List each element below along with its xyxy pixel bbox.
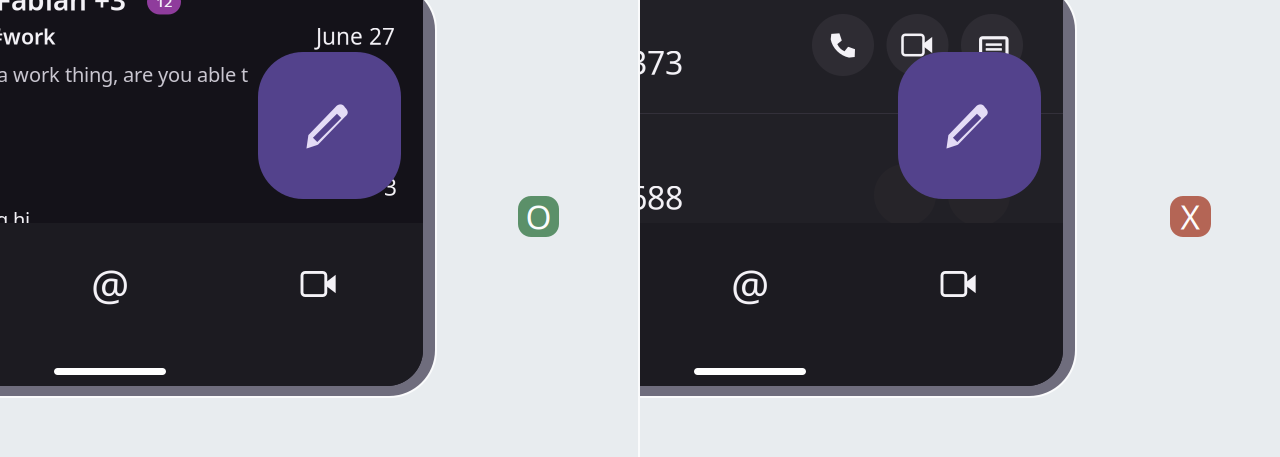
button[interactable]: Video call xyxy=(886,14,948,76)
staticText: 12 xyxy=(156,0,172,11)
button[interactable]: Mentions xyxy=(695,247,805,321)
button[interactable]: Compose xyxy=(258,52,401,199)
staticText: #work xyxy=(0,22,56,50)
button[interactable]: Calls xyxy=(264,247,374,321)
button[interactable]: App O xyxy=(518,196,559,237)
staticText: 3 xyxy=(384,172,397,202)
button[interactable]: Compose xyxy=(898,52,1041,199)
staticText: X xyxy=(1180,194,1200,239)
staticText: @ xyxy=(91,256,129,312)
staticText: June 27 xyxy=(316,21,395,51)
staticText: g hi xyxy=(0,206,30,233)
staticText: 688 xyxy=(629,176,683,218)
button[interactable]: Call xyxy=(812,14,874,76)
button[interactable]: App X xyxy=(1170,196,1211,237)
staticText: Fabian +3 xyxy=(0,0,126,18)
staticText: O xyxy=(525,194,551,239)
button[interactable]: Message xyxy=(961,14,1023,76)
staticText: 373 xyxy=(629,41,683,83)
button[interactable]: Calls xyxy=(904,247,1014,321)
staticText: a work thing, are you able t xyxy=(0,61,248,88)
button[interactable]: Mentions xyxy=(55,247,165,321)
staticText: @ xyxy=(731,256,769,312)
